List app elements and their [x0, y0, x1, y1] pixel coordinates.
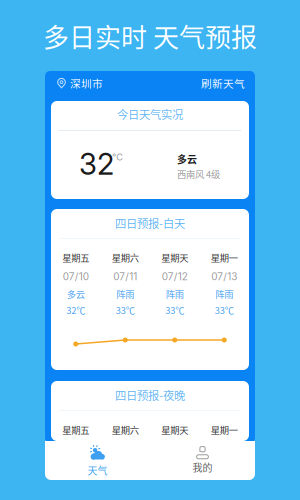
staticText: 刷新天气	[201, 75, 245, 91]
staticText: 33℃	[215, 303, 234, 317]
staticText: 阵雨	[116, 287, 134, 301]
staticText: 07/10	[63, 270, 89, 283]
staticText: 我的	[192, 460, 212, 474]
staticText: 星期天	[161, 423, 188, 436]
staticText: 多日实时 天气预报	[43, 17, 257, 55]
staticText: 07/11	[113, 270, 137, 283]
staticText: 星期五	[62, 251, 89, 264]
staticText: 阵雨	[166, 287, 184, 301]
staticText: 深圳市	[70, 75, 103, 91]
staticText: 多云	[177, 152, 197, 166]
staticText: 星期一	[211, 423, 238, 436]
staticText: 阵雨	[215, 287, 233, 301]
staticText: 星期五	[62, 423, 89, 436]
staticText: 星期天	[161, 251, 188, 264]
button[interactable]: 深圳市	[57, 75, 147, 91]
button[interactable]: 刷新天气	[157, 75, 245, 91]
staticText: 星期六	[112, 423, 139, 436]
button[interactable]: 我的	[150, 441, 255, 480]
button[interactable]: 天气	[45, 441, 150, 480]
staticText: 四日预报-白天	[115, 215, 185, 231]
staticText: 多云	[67, 287, 85, 301]
staticText: ℃	[112, 151, 123, 163]
staticText: 四日预报-夜晚	[115, 387, 185, 403]
staticText: 07/13	[211, 270, 237, 283]
staticText: 32	[79, 146, 114, 182]
staticText: 天气	[87, 463, 107, 477]
staticText: 33℃	[165, 303, 184, 317]
staticText: 西南风 4级	[177, 167, 220, 181]
staticText: 星期一	[211, 251, 238, 264]
staticText: 今日天气实况	[117, 106, 183, 122]
staticText: 32℃	[66, 303, 85, 317]
staticText: 星期六	[112, 251, 139, 264]
staticText: 33℃	[116, 303, 135, 317]
staticText: 07/12	[162, 270, 188, 283]
